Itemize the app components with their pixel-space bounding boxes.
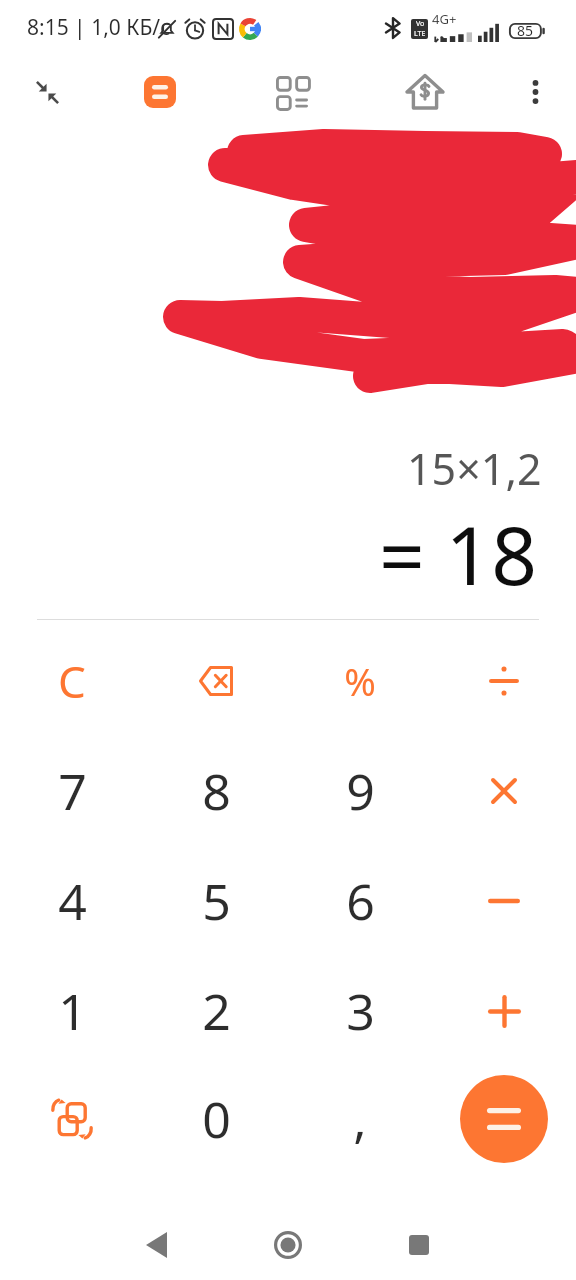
staticText: 4G+ — [432, 10, 457, 28]
button[interactable]: C — [0, 626, 144, 736]
button[interactable]: 4 — [0, 846, 144, 956]
button[interactable]: Backspace — [144, 626, 288, 736]
button[interactable]: Plus — [432, 956, 576, 1066]
button[interactable]: Back — [122, 1211, 190, 1279]
staticText: 4 — [58, 867, 87, 935]
button[interactable]: More options — [509, 66, 561, 118]
staticText: LTE — [414, 29, 426, 39]
button[interactable]: 0 — [144, 1064, 288, 1174]
staticText: 1 — [58, 977, 87, 1045]
staticText: 8:15 | 1,0 КБ/c — [27, 13, 171, 42]
button[interactable]: 8 — [144, 736, 288, 846]
staticText: , — [353, 1085, 367, 1153]
button[interactable]: Divide — [432, 626, 576, 736]
button[interactable]: Home — [254, 1211, 322, 1279]
staticText: C — [58, 651, 86, 711]
button[interactable]: Calculator — [134, 66, 186, 118]
button[interactable]: 6 — [288, 846, 432, 956]
button[interactable]: 7 — [0, 736, 144, 846]
button[interactable]: Categories — [266, 66, 318, 118]
staticText: 15×1,2 — [407, 439, 542, 498]
staticText: = 18 — [379, 499, 538, 608]
button[interactable]: Multiply — [432, 736, 576, 846]
button[interactable]: 9 — [288, 736, 432, 846]
button[interactable]: 3 — [288, 956, 432, 1066]
staticText: % — [344, 655, 376, 707]
button[interactable]: , — [288, 1064, 432, 1174]
staticText: 8 — [202, 757, 231, 825]
button[interactable]: Mortgage — [399, 66, 451, 118]
staticText: 3 — [346, 977, 375, 1045]
staticText: 6 — [346, 867, 375, 935]
staticText: 85 — [517, 21, 534, 40]
button[interactable]: Recents — [385, 1211, 453, 1279]
staticText: 9 — [346, 757, 375, 825]
staticText: Vo — [416, 19, 425, 29]
button[interactable]: Convert — [0, 1064, 144, 1174]
button[interactable]: % — [288, 626, 432, 736]
button[interactable]: 2 — [144, 956, 288, 1066]
button[interactable]: 1 — [0, 956, 144, 1066]
button[interactable]: Equals — [460, 1075, 548, 1163]
button[interactable]: Minus — [432, 846, 576, 956]
button[interactable]: 5 — [144, 846, 288, 956]
button[interactable]: Collapse — [21, 66, 73, 118]
staticText: 2 — [202, 977, 231, 1045]
staticText: 5 — [202, 867, 231, 935]
staticText: 7 — [58, 757, 87, 825]
staticText: 0 — [202, 1085, 231, 1153]
